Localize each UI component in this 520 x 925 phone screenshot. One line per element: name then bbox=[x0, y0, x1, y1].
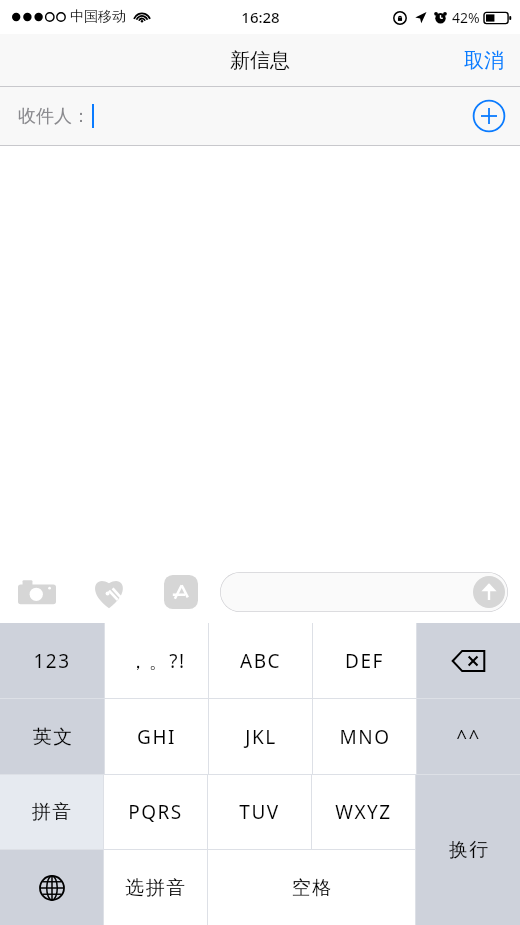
staticText: 收件人： bbox=[18, 105, 90, 128]
staticText: ABC bbox=[240, 648, 281, 674]
button[interactable]: 换行 bbox=[416, 775, 520, 925]
staticText: 拼音 bbox=[31, 800, 72, 824]
button[interactable]: Digital Touch bbox=[86, 569, 132, 615]
button[interactable]: MNO bbox=[313, 699, 416, 774]
button[interactable]: 空格 bbox=[208, 850, 415, 925]
button[interactable]: ，。?! bbox=[105, 623, 208, 698]
button[interactable]: JKL bbox=[209, 699, 312, 774]
staticText: ，。?! bbox=[128, 648, 186, 674]
button[interactable]: DEF bbox=[313, 623, 416, 698]
staticText: 空格 bbox=[291, 876, 332, 900]
staticText: 中国移动 bbox=[70, 8, 126, 26]
button[interactable]: App Store bbox=[158, 569, 204, 615]
staticText: 42% bbox=[452, 8, 480, 27]
staticText: TUV bbox=[239, 799, 280, 825]
staticText: 新信息 bbox=[230, 48, 290, 73]
button[interactable]: ^^ bbox=[417, 699, 520, 774]
staticText: WXYZ bbox=[335, 799, 392, 825]
button[interactable]: 英文 bbox=[0, 699, 104, 774]
button[interactable]: Send bbox=[473, 576, 505, 608]
button[interactable]: Switch keyboard bbox=[0, 850, 103, 925]
staticText: 选拼音 bbox=[125, 876, 187, 900]
staticText: MNO bbox=[339, 724, 391, 750]
button[interactable]: TUV bbox=[208, 775, 311, 849]
button[interactable]: PQRS bbox=[104, 775, 207, 849]
staticText: 123 bbox=[33, 648, 71, 674]
button[interactable]: 拼音 bbox=[0, 775, 103, 849]
button[interactable]: Backspace bbox=[417, 623, 520, 698]
button[interactable]: Camera bbox=[14, 569, 60, 615]
button[interactable]: 123 bbox=[0, 623, 104, 698]
staticText: JKL bbox=[245, 724, 277, 750]
staticText: DEF bbox=[345, 648, 384, 674]
button[interactable]: ABC bbox=[209, 623, 312, 698]
button[interactable]: Send bbox=[220, 572, 508, 612]
staticText: 换行 bbox=[448, 838, 489, 862]
button[interactable]: GHI bbox=[105, 699, 208, 774]
staticText: PQRS bbox=[128, 799, 183, 825]
button[interactable]: 选拼音 bbox=[104, 850, 207, 925]
staticText: 取消 bbox=[464, 48, 504, 73]
staticText: 英文 bbox=[32, 725, 73, 749]
staticText: 16:28 bbox=[241, 7, 280, 27]
staticText: GHI bbox=[137, 724, 176, 750]
button[interactable]: WXYZ bbox=[312, 775, 415, 849]
button[interactable]: 取消 bbox=[448, 38, 520, 83]
staticText: ^^ bbox=[456, 724, 481, 750]
button[interactable]: Add contact bbox=[472, 99, 506, 133]
